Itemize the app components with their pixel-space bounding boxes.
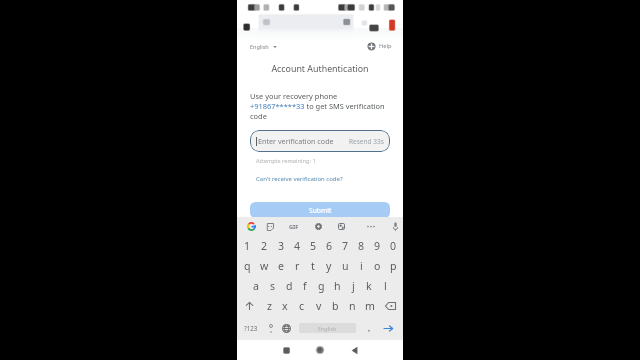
button[interactable]: y — [321, 256, 337, 276]
staticText: 3 — [278, 239, 285, 253]
button[interactable]: r — [289, 256, 305, 276]
button[interactable]: 0 — [385, 236, 401, 256]
button[interactable]: Shift — [237, 296, 261, 316]
button[interactable]: j — [345, 276, 361, 296]
button[interactable]: Google search — [244, 217, 258, 236]
button[interactable]: z — [261, 296, 277, 316]
staticText: 4 — [294, 239, 301, 253]
button[interactable]: m — [361, 296, 378, 316]
button[interactable]: p — [385, 256, 401, 276]
staticText: 0 — [390, 239, 397, 253]
staticText: o — [374, 259, 381, 273]
staticText: Attempts remaining: 1 — [256, 157, 316, 165]
button[interactable]: ?123 — [239, 316, 262, 340]
button[interactable]: d — [281, 276, 297, 296]
button[interactable]: v — [310, 296, 327, 316]
staticText: 5 — [310, 239, 317, 253]
button[interactable]: Voice input — [388, 217, 402, 236]
button[interactable]: Translate — [334, 217, 348, 236]
button[interactable]: Back — [344, 340, 364, 360]
staticText: u — [342, 259, 349, 273]
staticText: b — [332, 299, 339, 313]
staticText: Enter verification code — [258, 136, 334, 146]
button[interactable]: Stickers — [263, 217, 277, 236]
staticText: n — [349, 299, 356, 313]
button[interactable]: n — [344, 296, 361, 316]
button[interactable]: Keyboard settings — [311, 217, 325, 236]
button[interactable]: Enter — [380, 316, 396, 340]
button[interactable]: f — [297, 276, 313, 296]
button[interactable]: h — [329, 276, 345, 296]
button[interactable]: s — [264, 276, 281, 296]
button[interactable]: Emoji — [263, 316, 279, 340]
button[interactable]: Home — [310, 340, 330, 360]
staticText: ?123 — [244, 324, 258, 332]
button[interactable]: Recent apps — [276, 340, 296, 360]
staticText: Can't receive verification code? — [256, 175, 343, 183]
button[interactable]: English — [299, 323, 356, 333]
staticText: 6 — [326, 239, 333, 253]
button[interactable]: c — [293, 296, 310, 316]
button[interactable] — [362, 316, 376, 340]
staticText: t — [311, 259, 315, 273]
button[interactable]: Language — [368, 40, 392, 52]
button[interactable]: Submit — [250, 202, 390, 218]
staticText: j — [352, 279, 355, 293]
staticText: f — [303, 279, 307, 293]
staticText: English — [250, 43, 269, 50]
staticText: z — [267, 299, 272, 313]
button[interactable]: i — [353, 256, 369, 276]
staticText: 7 — [342, 239, 349, 253]
button[interactable]: Resend 33s — [349, 137, 384, 146]
staticText: 2 — [261, 239, 268, 253]
staticText: GIF — [289, 223, 299, 231]
staticText: p — [390, 259, 397, 273]
staticText: Account Authentication — [237, 63, 403, 75]
button[interactable]: More options — [364, 217, 378, 236]
staticText: e — [278, 259, 284, 273]
button[interactable]: Can't receive verification code? — [256, 175, 343, 183]
staticText: v — [316, 299, 322, 313]
button[interactable]: b — [327, 296, 344, 316]
button[interactable]: 4 — [289, 236, 305, 256]
staticText: w — [260, 259, 269, 273]
button[interactable]: o — [369, 256, 385, 276]
staticText: g — [318, 279, 325, 293]
button[interactable]: 9 — [369, 236, 385, 256]
staticText: s — [270, 279, 276, 293]
button[interactable]: 1 — [239, 236, 256, 256]
staticText: i — [360, 259, 363, 273]
button[interactable]: GIF — [286, 217, 302, 236]
staticText: 9 — [374, 239, 381, 253]
button[interactable]: k — [361, 276, 377, 296]
button[interactable]: 6 — [321, 236, 337, 256]
staticText: l — [384, 279, 387, 293]
button[interactable]: 3 — [273, 236, 289, 256]
button[interactable]: x — [277, 296, 293, 316]
staticText: m — [365, 299, 375, 313]
button[interactable]: Backspace — [378, 296, 403, 316]
button[interactable]: e — [273, 256, 289, 276]
staticText: Use your recovery phone +91867*****33 to… — [250, 91, 390, 121]
button[interactable]: w — [256, 256, 273, 276]
button[interactable]: g — [313, 276, 329, 296]
staticText: x — [282, 299, 288, 313]
button[interactable]: a — [247, 276, 264, 296]
staticText: 8 — [358, 239, 365, 253]
button[interactable]: q — [239, 256, 256, 276]
button[interactable]: Enter verification code — [250, 130, 390, 152]
button[interactable]: u — [337, 256, 353, 276]
button[interactable]: l — [377, 276, 393, 296]
staticText: c — [299, 299, 305, 313]
button[interactable]: t — [305, 256, 321, 276]
staticText: k — [366, 279, 372, 293]
button[interactable]: 5 — [305, 236, 321, 256]
button[interactable]: English — [250, 41, 277, 52]
other: Language — [368, 43, 375, 50]
button[interactable]: 2 — [256, 236, 273, 256]
button[interactable]: 7 — [337, 236, 353, 256]
staticText: y — [326, 259, 332, 273]
button[interactable]: Change language — [279, 316, 294, 340]
staticText: English — [318, 325, 337, 332]
button[interactable]: 8 — [353, 236, 369, 256]
